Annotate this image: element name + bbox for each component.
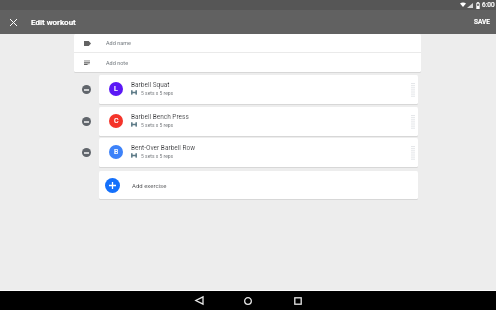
button[interactable]: L	[99, 75, 418, 104]
staticText: 6:00	[482, 1, 495, 9]
button[interactable]: SAVE	[468, 13, 496, 31]
button[interactable]: Home	[233, 291, 263, 310]
staticText: 5 sets x 5 reps	[141, 122, 174, 128]
button[interactable]: Remove Bent-Over Barbell Row	[78, 144, 95, 161]
staticText: Add exercise	[132, 182, 167, 189]
button[interactable]: Close	[4, 13, 22, 31]
button[interactable]: Remove Barbell Squat	[78, 81, 95, 98]
button[interactable]: Recent apps	[283, 291, 313, 310]
button[interactable]: B	[99, 138, 418, 167]
staticText: B	[114, 148, 119, 156]
staticText: Add name	[106, 40, 131, 46]
button[interactable]: Add name	[74, 34, 421, 52]
button[interactable]: Add exercise	[99, 171, 418, 199]
staticText: Barbell Squat	[131, 81, 170, 89]
staticText: 5 sets x 5 reps	[141, 90, 174, 96]
button[interactable]: C	[99, 107, 418, 136]
staticText: L	[114, 85, 118, 93]
button[interactable]: Add note	[74, 53, 421, 72]
staticText: Edit workout	[31, 18, 76, 27]
staticText: Bent-Over Barbell Row	[131, 144, 196, 152]
button[interactable]: Back	[184, 291, 214, 310]
staticText: SAVE	[474, 18, 490, 26]
button[interactable]: Remove Barbell Bench Press	[78, 113, 95, 130]
staticText: Add note	[106, 60, 129, 66]
staticText: C	[114, 117, 119, 125]
staticText: 5 sets x 5 reps	[141, 153, 174, 159]
staticText: Barbell Bench Press	[131, 113, 189, 121]
